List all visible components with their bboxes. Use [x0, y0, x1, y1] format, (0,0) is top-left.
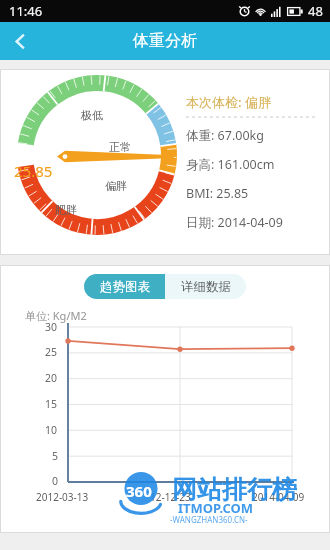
- staticText: 日期: 2014-04-09: [186, 214, 283, 231]
- staticText: 2014-04-09: [252, 490, 305, 504]
- staticText: 11:46: [9, 2, 43, 20]
- staticText: 15: [45, 397, 58, 411]
- staticText: 0: [52, 474, 59, 488]
- staticText: 2012-03-13: [36, 490, 89, 504]
- staticText: 20: [45, 371, 58, 385]
- staticText: 偏胖: [105, 179, 127, 193]
- staticText: 体重分析: [133, 31, 197, 51]
- staticText: ITMOP.COM: [178, 499, 254, 517]
- button[interactable]: 趋势图表: [84, 274, 165, 299]
- staticText: 肥胖: [55, 203, 77, 217]
- staticText: 12-12-23: [150, 490, 191, 504]
- staticText: 体重: 67.00kg: [186, 127, 264, 144]
- button[interactable]: 详细数据: [165, 274, 246, 299]
- staticText: 趋势图表: [100, 279, 150, 295]
- staticText: 极低: [81, 108, 103, 122]
- staticText: -WANGZHAN360.CN-: [170, 514, 248, 525]
- staticText: 单位: Kg/M2: [25, 308, 87, 323]
- staticText: 10: [45, 423, 58, 437]
- staticText: 5: [52, 449, 59, 463]
- button[interactable]: Back: [0, 22, 40, 60]
- staticText: 48: [308, 2, 323, 20]
- staticText: 本次体检: 偏胖: [186, 93, 271, 111]
- staticText: 网站排行榜: [172, 474, 297, 505]
- staticText: 360: [126, 481, 152, 501]
- staticText: 25.85: [14, 161, 53, 181]
- staticText: 详细数据: [181, 279, 231, 295]
- staticText: 正常: [109, 140, 131, 154]
- staticText: BMI: 25.85: [186, 185, 249, 202]
- staticText: 25: [45, 345, 58, 359]
- staticText: 30: [45, 320, 58, 334]
- staticText: 身高: 161.00cm: [186, 156, 275, 173]
